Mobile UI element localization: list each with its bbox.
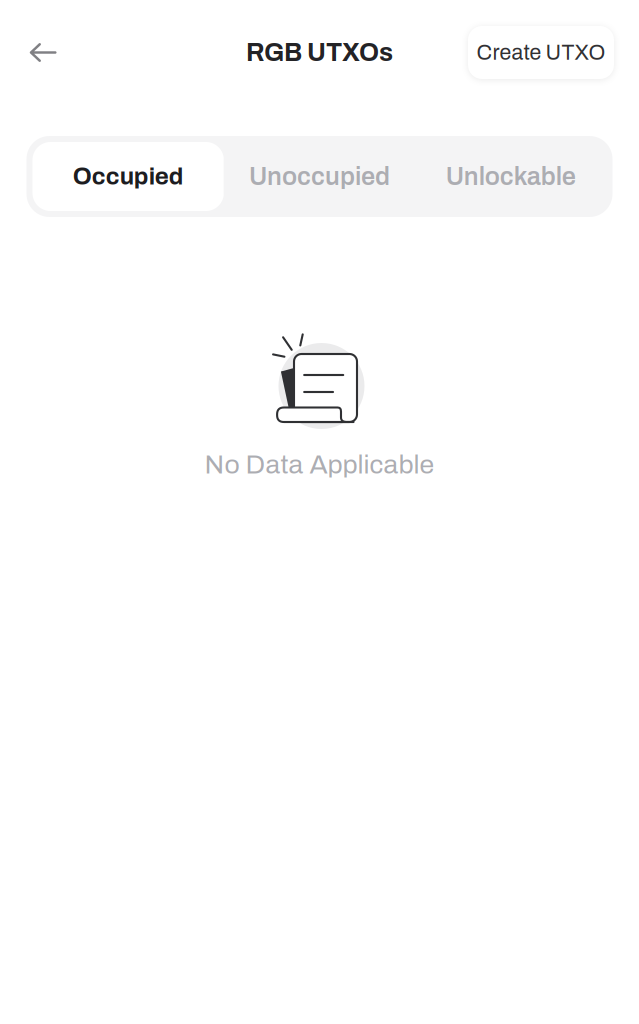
button[interactable]: Back bbox=[20, 29, 66, 75]
button[interactable]: Unlockable bbox=[415, 142, 606, 211]
button[interactable]: Unoccupied bbox=[224, 142, 415, 211]
button[interactable]: Occupied bbox=[32, 142, 224, 211]
staticText: Occupied bbox=[73, 163, 184, 189]
button[interactable]: Create UTXO bbox=[468, 26, 614, 79]
staticText: No Data Applicable bbox=[204, 450, 434, 479]
staticText: RGB UTXOs bbox=[246, 39, 393, 66]
staticText: Unoccupied bbox=[249, 163, 390, 190]
staticText: Unlockable bbox=[446, 163, 576, 190]
staticText: Create UTXO bbox=[476, 41, 605, 64]
